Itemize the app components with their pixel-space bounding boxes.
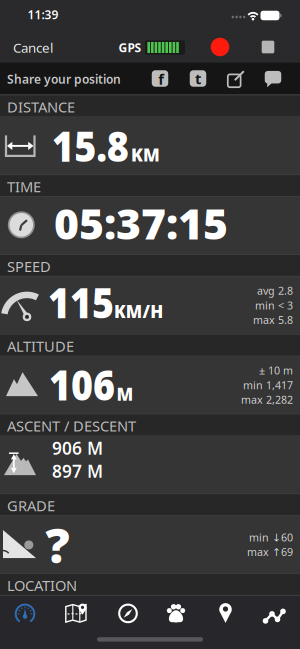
button[interactable]: Compose message [224,67,248,91]
button[interactable]: Map [53,596,99,630]
staticText: KM [131,143,160,166]
button[interactable]: Record [211,38,229,56]
staticText: 15.8 [52,117,139,174]
staticText: avg 2.8 [257,284,293,298]
button[interactable]: Location [202,596,248,630]
staticText: Cancel [13,39,53,56]
button[interactable]: Statistics [252,596,298,630]
staticText: 106 [49,356,124,412]
staticText: min 1,417 [243,378,293,392]
button[interactable]: Share on Facebook [148,66,172,90]
staticText: 897 M [52,460,103,483]
staticText: ALTITUDE [7,336,74,356]
staticText: ? [45,513,69,576]
staticText: DISTANCE [7,97,75,117]
staticText: 11:39 [27,6,58,22]
staticText: GRADE [7,496,55,515]
staticText: LOCATION [7,576,77,595]
button[interactable]: Share on Twitter [186,66,210,90]
staticText: SPEED [7,257,51,276]
staticText: min ↓60 [249,530,293,544]
button[interactable]: Tracks [153,596,199,630]
staticText: max 5.8 [253,313,293,327]
staticText: 05:37:15 [54,195,228,251]
button[interactable]: Compass [105,596,151,630]
staticText: max 2,282 [241,392,293,407]
staticText: GPS [118,39,141,55]
staticText: M [116,382,133,405]
staticText: KM/H [114,300,164,323]
button[interactable]: Speedometer [2,596,48,630]
staticText: t [195,69,201,88]
staticText: 115 [48,273,123,330]
staticText: Share your position [7,71,121,87]
staticText: max ↑69 [247,545,293,559]
staticText: min < 3 [255,298,293,312]
staticText: ± 10 m [259,363,293,378]
staticText: f [158,69,164,89]
staticText: 906 M [52,437,103,460]
button[interactable]: Cancel [3,32,63,62]
button[interactable]: Send message [261,67,285,91]
staticText: TIME [7,177,41,196]
staticText: ASCENT / DESCENT [7,416,136,436]
